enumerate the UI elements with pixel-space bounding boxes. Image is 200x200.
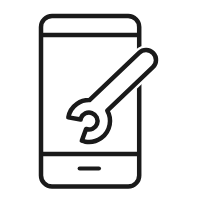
button[interactable]: Phone repair bbox=[0, 0, 200, 200]
